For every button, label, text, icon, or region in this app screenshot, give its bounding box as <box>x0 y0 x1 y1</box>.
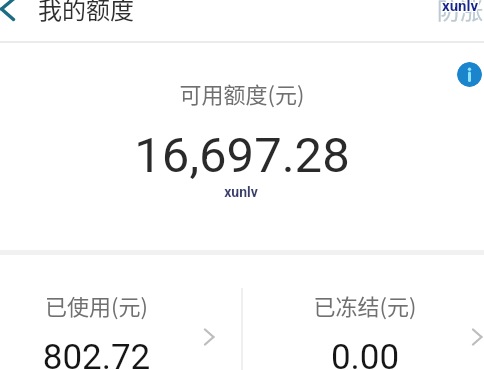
staticText: xunlv <box>442 0 479 16</box>
staticText: 防涨 <box>437 0 483 25</box>
staticText: 802.72 <box>0 337 193 370</box>
staticText: xunlv <box>443 0 480 15</box>
staticText: xunlv <box>441 0 478 15</box>
button[interactable]: Back <box>0 0 28 28</box>
staticText: xunlv <box>443 0 480 16</box>
staticText: xunlv <box>442 0 479 14</box>
staticText: xunlv <box>443 0 480 14</box>
button[interactable]: 已冻结(元) <box>242 255 484 370</box>
button[interactable]: Info <box>457 62 482 87</box>
staticText: 可用额度(元) <box>0 77 484 109</box>
staticText: 已使用(元) <box>0 289 193 321</box>
staticText: xunlv <box>441 0 478 14</box>
staticText: 我的额度 <box>38 0 134 26</box>
staticText: 0.00 <box>244 337 484 370</box>
staticText: 16,697.28 <box>0 127 484 184</box>
staticText: 已冻结(元) <box>244 289 484 321</box>
staticText: xunlv <box>441 0 478 16</box>
staticText: xunlv <box>442 0 479 15</box>
button[interactable]: 已使用(元) <box>0 255 242 370</box>
staticText: xunlv <box>0 184 483 200</box>
